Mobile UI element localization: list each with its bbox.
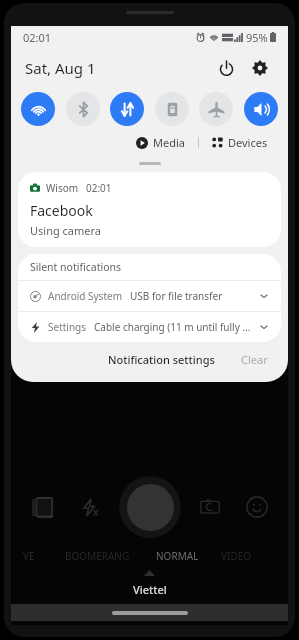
staticText: Clear <box>241 352 268 367</box>
button[interactable]: Settings <box>246 54 274 82</box>
staticText: Viettel <box>133 582 167 597</box>
button[interactable]: NORMAL <box>154 549 201 563</box>
staticText: Devices <box>228 135 268 150</box>
button[interactable]: Airplane mode <box>199 92 233 126</box>
button[interactable]: Android System <box>18 281 281 311</box>
staticText: 02:01 <box>86 181 112 195</box>
staticText: Media <box>153 135 185 150</box>
button[interactable]: SIM card <box>155 92 189 126</box>
button[interactable]: BOOMERANG <box>63 549 132 563</box>
button[interactable]: Power <box>212 54 240 82</box>
staticText: Facebook <box>30 201 93 220</box>
button[interactable]: Silent notifications <box>18 254 281 280</box>
button[interactable]: Notification settings <box>102 348 221 371</box>
button[interactable]: Bluetooth <box>66 92 100 126</box>
staticText: Sat, Aug 1 <box>25 58 96 78</box>
staticText: Silent notifications <box>30 260 122 274</box>
staticText: Wisom <box>46 181 79 195</box>
staticText: Using camera <box>30 223 102 238</box>
button[interactable]: Clear <box>235 348 274 371</box>
staticText: VIDEO <box>221 549 252 563</box>
staticText: 95% <box>246 30 268 45</box>
button[interactable]: Mobile data <box>110 92 144 126</box>
staticText: Notification settings <box>108 352 215 367</box>
button[interactable]: VE <box>21 549 37 563</box>
staticText: NORMAL <box>156 549 199 563</box>
staticText: BOOMERANG <box>65 549 130 563</box>
staticText: Cable charging (11 m until fully char… <box>94 320 255 334</box>
staticText: Android System <box>48 289 123 303</box>
button[interactable]: Shutter <box>119 476 181 538</box>
button[interactable]: Media <box>132 132 189 153</box>
staticText: VE <box>23 549 35 563</box>
button[interactable]: Switch camera <box>193 490 227 524</box>
button[interactable]: VIDEO <box>219 549 254 563</box>
button[interactable]: Wisom <box>18 172 281 247</box>
staticText: 02:01 <box>23 30 52 45</box>
button[interactable]: Wi-Fi <box>21 92 55 126</box>
button[interactable]: Effects <box>240 490 274 524</box>
staticText: USB for file transfer <box>130 289 255 303</box>
button[interactable]: Sound <box>244 92 278 126</box>
button[interactable]: Flash off <box>72 490 106 524</box>
staticText: Settings <box>48 320 87 334</box>
button[interactable]: Settings <box>18 312 281 342</box>
button[interactable]: Gallery <box>25 490 59 524</box>
button[interactable]: Devices <box>208 132 272 153</box>
